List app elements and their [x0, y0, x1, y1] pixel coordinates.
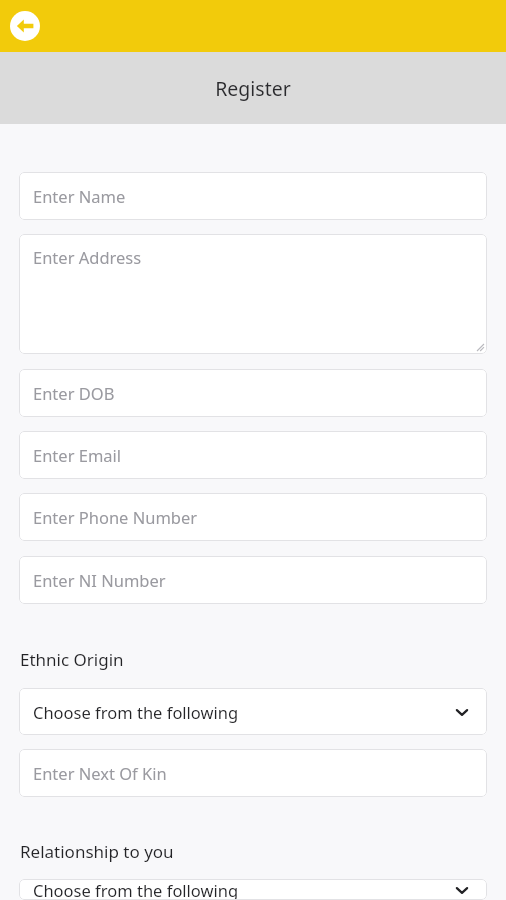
button[interactable]: Enter Email — [19, 431, 487, 479]
staticText: Choose from the following — [33, 879, 239, 900]
button[interactable]: Back — [6, 7, 44, 45]
staticText: Enter Address — [33, 246, 142, 268]
button[interactable]: Enter Phone Number — [19, 493, 487, 541]
button[interactable]: Enter Address — [19, 234, 487, 354]
staticText: Choose from the following — [33, 701, 239, 723]
button[interactable]: Enter DOB — [19, 369, 487, 417]
staticText: Enter Name — [33, 185, 126, 207]
button[interactable]: Choose from the following — [19, 688, 487, 735]
staticText: Enter Email — [33, 444, 122, 466]
staticText: Enter NI Number — [33, 569, 166, 591]
staticText: Relationship to you — [20, 840, 174, 863]
staticText: Enter DOB — [33, 382, 115, 404]
staticText: Ethnic Origin — [20, 648, 124, 671]
button[interactable]: Enter Next Of Kin — [19, 749, 487, 797]
button[interactable]: Enter Name — [19, 172, 487, 220]
button[interactable]: Choose from the following — [19, 879, 487, 900]
staticText: Register — [215, 75, 291, 102]
button[interactable]: Enter NI Number — [19, 556, 487, 604]
staticText: Enter Next Of Kin — [33, 762, 167, 784]
staticText: Enter Phone Number — [33, 506, 198, 528]
